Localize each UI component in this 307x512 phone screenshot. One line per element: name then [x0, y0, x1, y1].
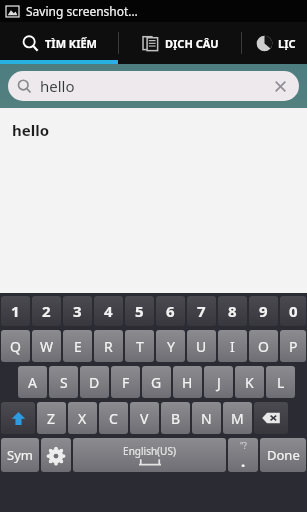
- button[interactable]: Q: [1, 330, 30, 362]
- staticText: V: [140, 409, 149, 428]
- staticText: R: [104, 337, 113, 356]
- button[interactable]: W: [32, 330, 61, 362]
- button[interactable]: K: [235, 366, 264, 398]
- staticText: E: [74, 337, 82, 356]
- button[interactable]: 5: [125, 296, 154, 326]
- button[interactable]: B: [161, 402, 190, 434]
- button[interactable]: Y: [156, 330, 185, 362]
- button[interactable]: 3: [63, 296, 92, 326]
- button[interactable]: L: [266, 366, 295, 398]
- button[interactable]: Settings: [41, 438, 71, 472]
- button[interactable]: P: [280, 330, 306, 362]
- button[interactable]: 6: [156, 296, 185, 326]
- button[interactable]: 7: [187, 296, 216, 326]
- button[interactable]: X: [68, 402, 97, 434]
- button[interactable]: J: [204, 366, 233, 398]
- button[interactable]: O: [249, 330, 278, 362]
- staticText: N: [201, 409, 212, 428]
- button[interactable]: N: [192, 402, 221, 434]
- staticText: 3: [73, 301, 82, 321]
- staticText: LỊC: [278, 36, 296, 51]
- staticText: U: [196, 337, 207, 356]
- button[interactable]: 9: [249, 296, 278, 326]
- staticText: M: [231, 409, 244, 428]
- button[interactable]: 1: [1, 296, 30, 326]
- staticText: hello: [12, 120, 50, 140]
- staticText: 2: [42, 301, 51, 321]
- staticText: C: [109, 409, 118, 428]
- staticText: .: [241, 451, 246, 471]
- button[interactable]: F: [111, 366, 140, 398]
- button[interactable]: U: [187, 330, 216, 362]
- button[interactable]: TÌM KIẾM: [0, 22, 118, 64]
- button[interactable]: T: [125, 330, 154, 362]
- staticText: 5: [135, 301, 144, 321]
- staticText: D: [89, 373, 100, 392]
- staticText: Saving screenshot…: [26, 3, 138, 19]
- staticText: B: [171, 409, 181, 428]
- staticText: Done: [267, 446, 300, 464]
- button[interactable]: E: [63, 330, 92, 362]
- staticText: G: [151, 373, 162, 392]
- staticText: H: [182, 373, 193, 392]
- staticText: S: [60, 373, 68, 392]
- staticText: Sym: [7, 446, 33, 464]
- button[interactable]: M: [223, 402, 252, 434]
- button[interactable]: I: [218, 330, 247, 362]
- staticText: Y: [167, 337, 175, 356]
- button[interactable]: Z: [37, 402, 66, 434]
- staticText: P: [289, 337, 298, 356]
- staticText: "?: [240, 440, 247, 451]
- staticText: Z: [47, 409, 56, 428]
- staticText: 6: [166, 301, 175, 321]
- staticText: K: [245, 373, 254, 392]
- button[interactable]: Period: [228, 438, 258, 472]
- staticText: English(US): [123, 444, 176, 458]
- button[interactable]: Shift: [1, 402, 35, 434]
- button[interactable]: Clear: [270, 76, 290, 96]
- button[interactable]: G: [142, 366, 171, 398]
- staticText: hello: [40, 76, 75, 96]
- staticText: A: [28, 373, 37, 392]
- staticText: W: [40, 337, 54, 356]
- button[interactable]: 4: [94, 296, 123, 326]
- button[interactable]: V: [130, 402, 159, 434]
- staticText: Q: [10, 337, 21, 356]
- button[interactable]: Backspace: [254, 402, 288, 434]
- staticText: L: [277, 373, 285, 392]
- button[interactable]: C: [99, 402, 128, 434]
- staticText: DỊCH CÂU: [165, 36, 219, 51]
- button[interactable]: S: [49, 366, 78, 398]
- button[interactable]: 2: [32, 296, 61, 326]
- button[interactable]: DỊCH CÂU: [119, 22, 241, 64]
- button[interactable]: hello: [8, 71, 299, 101]
- staticText: T: [136, 337, 144, 356]
- staticText: 9: [259, 301, 268, 321]
- button[interactable]: LỊC: [242, 22, 307, 64]
- staticText: TÌM KIẾM: [45, 36, 97, 51]
- button[interactable]: R: [94, 330, 123, 362]
- staticText: 0: [289, 301, 298, 321]
- staticText: J: [217, 373, 221, 392]
- button[interactable]: 0: [280, 296, 306, 326]
- staticText: I: [230, 337, 235, 356]
- button[interactable]: D: [80, 366, 109, 398]
- staticText: 7: [197, 301, 206, 321]
- button[interactable]: Space: [73, 438, 226, 472]
- button[interactable]: Done: [260, 438, 306, 472]
- staticText: F: [122, 373, 130, 392]
- staticText: O: [258, 337, 269, 356]
- button[interactable]: A: [18, 366, 47, 398]
- staticText: 1: [11, 301, 20, 321]
- button[interactable]: 8: [218, 296, 247, 326]
- button[interactable]: Sym: [1, 438, 39, 472]
- staticText: 4: [104, 301, 113, 321]
- staticText: 8: [228, 301, 237, 321]
- staticText: X: [78, 409, 87, 428]
- button[interactable]: H: [173, 366, 202, 398]
